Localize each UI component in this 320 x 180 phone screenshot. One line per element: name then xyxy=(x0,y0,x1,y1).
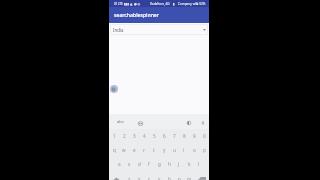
button[interactable]: s xyxy=(124,157,134,171)
button[interactable]: j xyxy=(174,157,184,171)
staticText: 7 xyxy=(173,133,176,139)
button[interactable]: 3 xyxy=(129,129,139,143)
button[interactable]: v xyxy=(154,171,164,180)
button[interactable]: Shift xyxy=(109,171,124,180)
button[interactable]: d xyxy=(134,157,144,171)
staticText: 4 xyxy=(143,133,146,139)
button[interactable]: o xyxy=(189,143,199,157)
staticText: 9 xyxy=(193,133,196,139)
button[interactable]: Backspace xyxy=(194,171,209,180)
staticText: x xyxy=(138,176,141,180)
staticText: ▰ 52% xyxy=(196,2,206,6)
staticText: ▮▮▮ ▲ xyxy=(124,2,133,6)
staticText: f xyxy=(148,161,150,167)
staticText: e xyxy=(133,147,136,153)
staticText: w xyxy=(122,147,126,153)
staticText: z xyxy=(128,176,131,180)
staticText: c xyxy=(148,176,151,180)
button[interactable]: e xyxy=(129,143,139,157)
button[interactable]: q xyxy=(109,143,119,157)
button[interactable]: y xyxy=(159,143,169,157)
staticText: VI LTE xyxy=(114,2,123,6)
button[interactable]: Voice input xyxy=(201,121,205,125)
staticText: 3 xyxy=(133,133,136,139)
button[interactable]: Stickers xyxy=(138,121,143,126)
button[interactable]: l xyxy=(194,157,204,171)
staticText: k xyxy=(188,161,191,167)
button[interactable]: g xyxy=(154,157,164,171)
button[interactable]: 9 xyxy=(189,129,199,143)
button[interactable]: 2 xyxy=(119,129,129,143)
button[interactable]: Theme xyxy=(187,121,191,125)
staticText: q xyxy=(113,147,116,153)
staticText: Company wifi xyxy=(178,2,198,6)
staticText: ▮ xyxy=(173,2,175,6)
staticText: searchablespinner xyxy=(114,12,159,19)
button[interactable]: h xyxy=(164,157,174,171)
button[interactable]: 7 xyxy=(169,129,179,143)
staticText: u xyxy=(173,147,176,153)
staticText: 1 xyxy=(113,133,116,139)
staticText: 6 xyxy=(163,133,166,139)
staticText: p xyxy=(203,147,206,153)
button[interactable]: z xyxy=(124,171,134,180)
staticText: n xyxy=(178,176,181,180)
staticText: a xyxy=(118,161,121,167)
button[interactable]: c xyxy=(144,171,154,180)
button[interactable]: 8 xyxy=(179,129,189,143)
button[interactable]: Assistant xyxy=(110,85,118,93)
button[interactable]: a xyxy=(114,157,124,171)
staticText: India xyxy=(113,27,124,33)
button[interactable]: i xyxy=(179,143,189,157)
button[interactable]: t xyxy=(149,143,159,157)
staticText: 0 xyxy=(203,133,206,139)
button[interactable]: abc xyxy=(117,119,124,125)
staticText: o xyxy=(193,147,196,153)
button[interactable]: p xyxy=(199,143,209,157)
button[interactable]: w xyxy=(119,143,129,157)
button[interactable]: b xyxy=(164,171,174,180)
staticText: h xyxy=(168,161,171,167)
staticText: g xyxy=(158,161,161,167)
staticText: abc xyxy=(117,119,124,125)
button[interactable]: n xyxy=(174,171,184,180)
staticText: ● ◎ xyxy=(134,2,141,6)
button[interactable]: 4 xyxy=(139,129,149,143)
staticText: s xyxy=(128,161,131,167)
staticText: 8 xyxy=(183,133,186,139)
staticText: d xyxy=(138,161,141,167)
button[interactable]: f xyxy=(144,157,154,171)
button[interactable]: 1 xyxy=(109,129,119,143)
button[interactable]: India xyxy=(110,24,208,35)
button[interactable]: 0 xyxy=(199,129,209,143)
button[interactable]: x xyxy=(134,171,144,180)
staticText: l xyxy=(198,161,200,167)
staticText: r xyxy=(143,147,145,153)
staticText: 2 xyxy=(123,133,126,139)
staticText: m xyxy=(187,176,192,180)
staticText: t xyxy=(153,147,155,153)
staticText: j xyxy=(178,161,180,167)
staticText: v xyxy=(158,176,161,180)
button[interactable]: k xyxy=(184,157,194,171)
button[interactable]: 5 xyxy=(149,129,159,143)
staticText: b xyxy=(168,176,171,180)
staticText: y xyxy=(163,147,166,153)
staticText: i xyxy=(183,147,185,153)
staticText: 5 xyxy=(153,133,156,139)
staticText: Vodafone, 4G xyxy=(150,2,170,6)
button[interactable]: m xyxy=(184,171,194,180)
button[interactable]: 6 xyxy=(159,129,169,143)
button[interactable]: r xyxy=(139,143,149,157)
button[interactable]: u xyxy=(169,143,179,157)
